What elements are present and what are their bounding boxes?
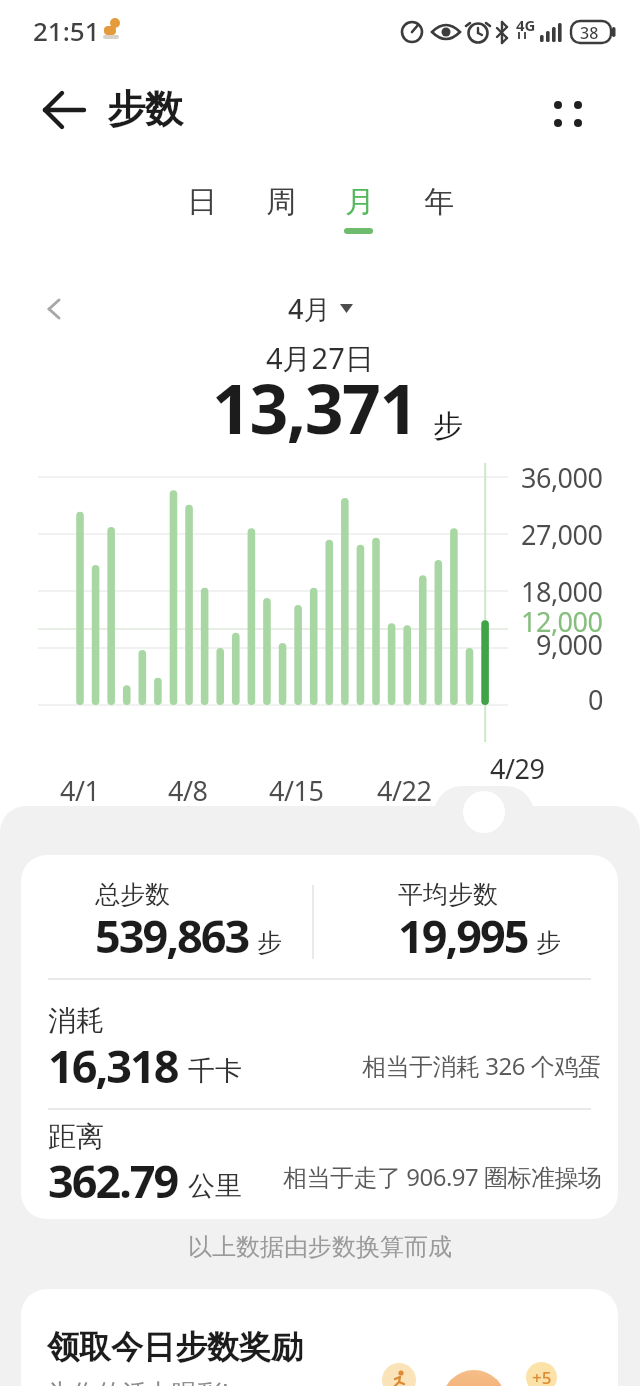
staticText: 以上数据由步数换算而成 [188,1232,452,1262]
staticText: 为你的活力喝彩! [47,1375,229,1386]
staticText: 平均步数 [398,879,498,910]
staticText: 4/22 [377,772,432,809]
staticText: 4/29 [490,750,545,787]
staticText: 4/15 [269,772,324,809]
staticText: 36,000 [521,459,603,496]
staticText: 21:51 [33,13,100,48]
staticText: 38 [580,22,599,44]
staticText: 12,000 [521,603,603,640]
button[interactable]: 领取今日步数奖励 [21,1289,618,1386]
button[interactable]: 年 [399,183,478,227]
staticText: 9,000 [536,626,603,663]
staticText: 千卡 [188,1054,242,1088]
staticText: 年 [424,183,454,221]
button[interactable] [34,84,96,136]
staticText: 4/8 [168,772,208,809]
staticText: 19,995 [398,905,528,966]
staticText: 4月 [288,290,331,327]
staticText: 日 [187,183,217,221]
button[interactable]: 周 [241,183,320,227]
button[interactable] [544,92,592,136]
staticText: 16,318 [48,1035,178,1096]
staticText: 4/1 [60,772,100,809]
staticText: 4G [516,15,536,35]
staticText: 4月27日 [266,338,374,378]
staticText: 27,000 [521,516,603,553]
staticText: 消耗 [48,1003,104,1038]
staticText: 领取今日步数奖励 [47,1327,303,1367]
staticText: 步 [257,927,282,958]
staticText: 539,863 [95,905,249,966]
button[interactable]: 月 [320,183,399,227]
staticText: 0 [588,681,603,718]
staticText: 13,371 [212,361,417,454]
staticText: 362.79 [48,1150,178,1211]
staticText: 步 [433,407,463,445]
staticText: 相当于消耗 326 个鸡蛋 [362,1049,602,1082]
button[interactable]: 日 [162,183,241,227]
button[interactable]: 4月 [288,290,353,327]
button[interactable] [463,791,505,833]
staticText: 总步数 [95,879,170,910]
staticText: 月 [345,183,375,221]
staticText: 距离 [48,1119,104,1154]
staticText: 相当于走了 906.97 圈标准操场 [283,1160,602,1193]
staticText: 18,000 [521,573,603,610]
staticText: 公里 [188,1169,242,1203]
staticText: 步 [536,927,561,958]
staticText: 步数 [107,85,183,133]
staticText: 周 [266,183,296,221]
staticText: +5 [532,1366,552,1386]
button[interactable] [34,288,74,330]
